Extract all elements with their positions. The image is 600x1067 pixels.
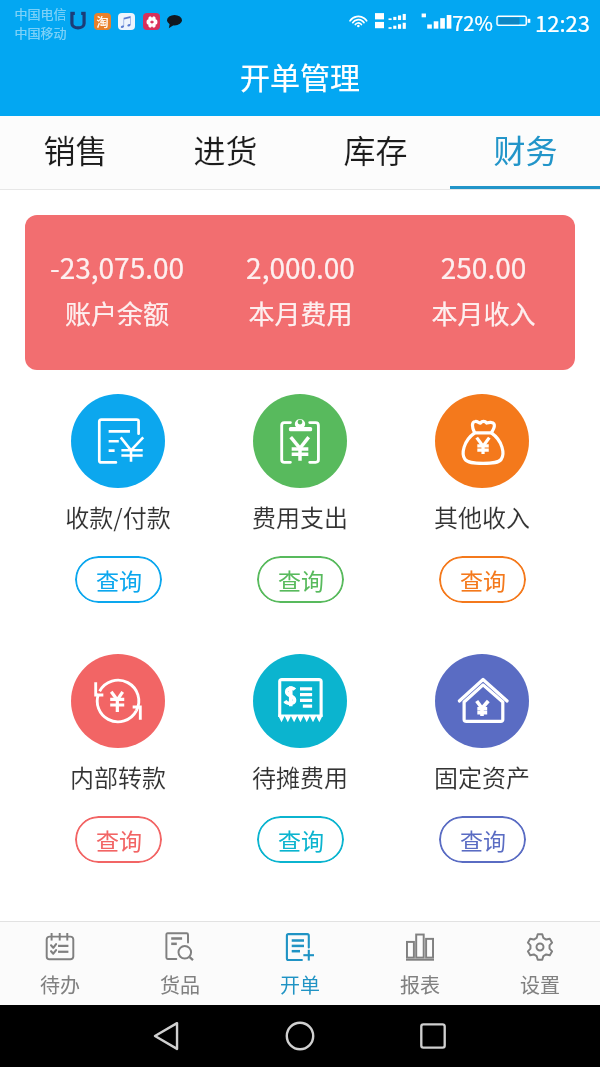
- button[interactable]: -23,075.00: [25, 215, 575, 370]
- button[interactable]: 设置: [480, 922, 600, 1005]
- staticText: 设置: [480, 970, 600, 999]
- staticText: 待办: [0, 970, 120, 999]
- button[interactable]: Home: [280, 1016, 320, 1056]
- button[interactable]: 货品: [120, 922, 240, 1005]
- staticText: 收款/付款: [27, 499, 209, 534]
- staticText: 开单管理: [240, 54, 360, 97]
- button[interactable]: 报表: [360, 922, 480, 1005]
- staticText: 账户余额: [25, 294, 209, 332]
- staticText: 查询: [460, 563, 506, 596]
- staticText: 本月费用: [209, 294, 392, 332]
- staticText: 72%: [452, 8, 493, 37]
- staticText: 内部转款: [27, 759, 209, 794]
- button[interactable]: 费用支出: [209, 394, 391, 603]
- staticText: 12:23: [535, 6, 590, 38]
- button[interactable]: 财务: [450, 116, 600, 189]
- staticText: 报表: [360, 970, 480, 999]
- staticText: 本月收入: [392, 294, 575, 332]
- staticText: 待摊费用: [209, 759, 391, 794]
- button[interactable]: 进货: [150, 116, 300, 189]
- staticText: 库存: [343, 126, 408, 172]
- button[interactable]: 查询: [257, 816, 344, 863]
- staticText: ♫: [120, 13, 133, 30]
- button[interactable]: 库存: [300, 116, 450, 189]
- staticText: 费用支出: [209, 499, 391, 534]
- button[interactable]: Recents: [413, 1016, 453, 1056]
- staticText: -23,075.00: [25, 247, 209, 288]
- button[interactable]: 固定资产: [391, 654, 573, 863]
- button[interactable]: Back: [146, 1016, 186, 1056]
- staticText: 开单: [240, 970, 360, 999]
- staticText: 查询: [460, 823, 506, 856]
- staticText: 财务: [493, 126, 558, 172]
- staticText: 查询: [96, 823, 142, 856]
- staticText: 其他收入: [391, 499, 573, 534]
- button[interactable]: 内部转款: [27, 654, 209, 863]
- button[interactable]: 开单: [240, 922, 360, 1005]
- button[interactable]: 销售: [0, 116, 150, 189]
- staticText: 中国电信: [14, 4, 67, 23]
- button[interactable]: 待摊费用: [209, 654, 391, 863]
- button[interactable]: 查询: [257, 556, 344, 603]
- staticText: 查询: [278, 823, 324, 856]
- button[interactable]: 查询: [75, 556, 162, 603]
- staticText: 查询: [96, 563, 142, 596]
- staticText: 查询: [278, 563, 324, 596]
- button[interactable]: 其他收入: [391, 394, 573, 603]
- staticText: 中国移动: [14, 23, 67, 42]
- staticText: 进货: [193, 126, 258, 172]
- staticText: 销售: [43, 126, 108, 172]
- staticText: 淘: [96, 13, 109, 30]
- button[interactable]: 查询: [75, 816, 162, 863]
- button[interactable]: 查询: [439, 816, 526, 863]
- button[interactable]: 查询: [439, 556, 526, 603]
- button[interactable]: 收款/付款: [27, 394, 209, 603]
- staticText: 货品: [120, 970, 240, 999]
- staticText: 2,000.00: [209, 247, 392, 288]
- staticText: 固定资产: [391, 759, 573, 794]
- staticText: 250.00: [392, 247, 575, 288]
- button[interactable]: 待办: [0, 922, 120, 1005]
